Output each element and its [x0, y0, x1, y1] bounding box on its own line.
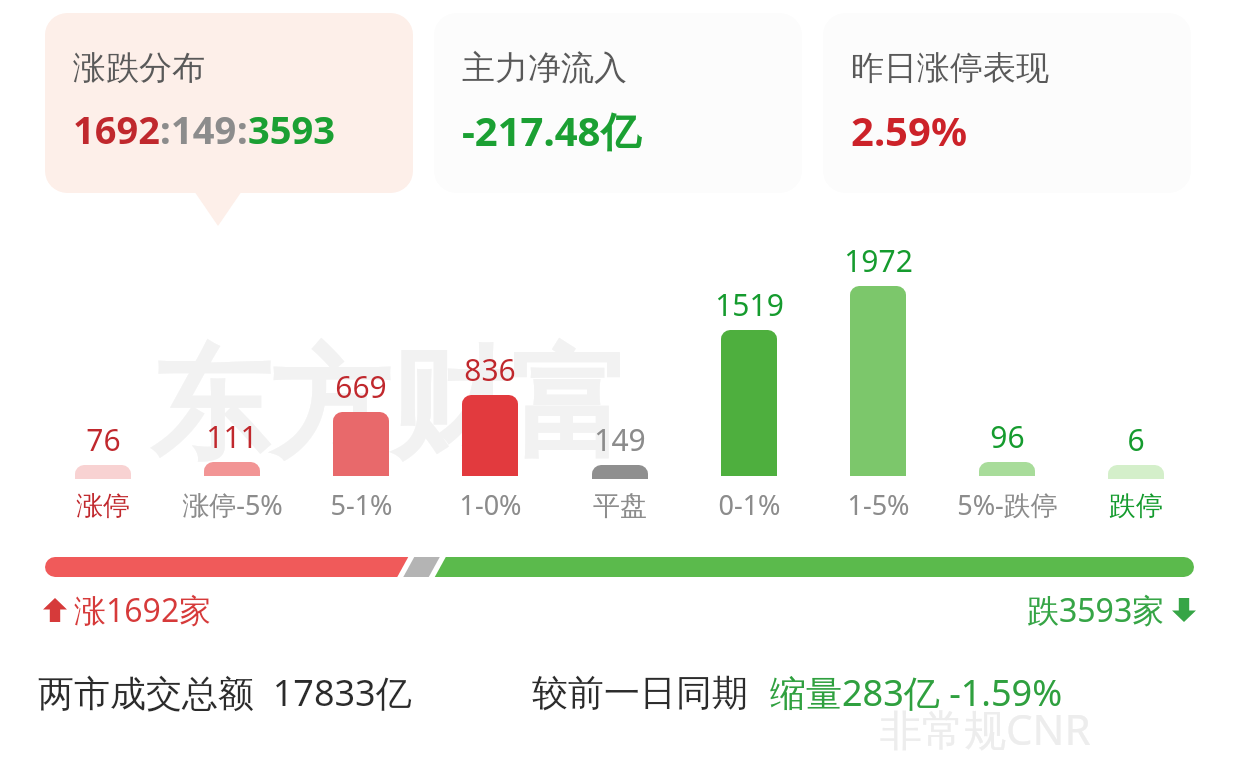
other: Advancing — [42, 597, 68, 623]
staticText: 涨停-5% — [182, 486, 283, 523]
staticText: 1692 — [73, 103, 160, 155]
button[interactable]: 涨跌分布 — [45, 13, 413, 193]
staticText: 较前一日同期 — [532, 670, 748, 715]
button[interactable]: 836 — [432, 349, 548, 523]
staticText: 缩量283亿 -1.59% — [770, 668, 1063, 717]
staticText: 96 — [990, 416, 1025, 457]
button[interactable]: Advancing — [42, 588, 212, 632]
staticText: 76 — [86, 419, 121, 460]
button[interactable]: 76 — [45, 419, 161, 523]
button[interactable]: 跌3593家 — [1027, 588, 1197, 632]
staticText: 5-1% — [330, 486, 393, 523]
staticText: 1972 — [844, 240, 913, 281]
staticText: 111 — [206, 416, 258, 457]
staticText: -217.48亿 — [462, 103, 641, 158]
button[interactable]: 主力净流入 — [434, 13, 802, 193]
staticText: 跌停 — [1109, 489, 1163, 523]
staticText: 0-1% — [718, 486, 781, 523]
other: Declining — [1171, 597, 1197, 623]
button[interactable]: 669 — [303, 366, 419, 523]
staticText: 两市成交总额 17833亿 — [38, 668, 412, 717]
staticText: 2.59% — [851, 103, 967, 157]
staticText: 1-5% — [847, 486, 910, 523]
button[interactable]: 昨日涨停表现 — [823, 13, 1191, 193]
staticText: 平盘 — [593, 489, 647, 523]
staticText: 836 — [464, 349, 516, 390]
button[interactable]: 6 — [1078, 419, 1194, 523]
button[interactable]: 111 — [174, 416, 290, 523]
button[interactable]: 1972 — [820, 240, 936, 523]
staticText: 669 — [335, 366, 387, 407]
button[interactable]: 96 — [949, 416, 1065, 523]
staticText: 1519 — [715, 284, 784, 325]
staticText: : — [160, 103, 171, 155]
staticText: 跌3593家 — [1027, 588, 1165, 632]
staticText: 149 — [171, 103, 237, 155]
staticText: 6 — [1127, 419, 1145, 460]
staticText: 涨停 — [76, 489, 130, 523]
button[interactable] — [45, 557, 1194, 577]
staticText: 涨跌分布 — [73, 47, 205, 89]
staticText: 主力净流入 — [462, 47, 627, 89]
staticText: 3593 — [248, 103, 335, 155]
staticText: : — [237, 103, 248, 155]
button[interactable]: 1519 — [691, 284, 807, 523]
staticText: 东方财富 — [150, 330, 630, 481]
staticText: 1-0% — [459, 486, 522, 523]
button[interactable]: 149 — [562, 419, 678, 523]
staticText: 涨1692家 — [74, 588, 212, 632]
staticText: 5%-跌停 — [957, 486, 1058, 523]
staticText: 昨日涨停表现 — [851, 47, 1049, 89]
staticText: 非常规CNR — [880, 700, 1091, 757]
staticText: 149 — [594, 419, 646, 460]
